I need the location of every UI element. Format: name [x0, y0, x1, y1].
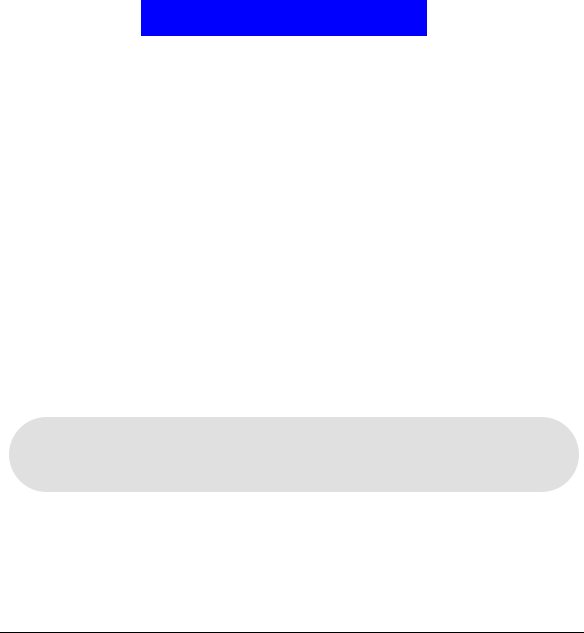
button[interactable]: Action [9, 417, 579, 492]
